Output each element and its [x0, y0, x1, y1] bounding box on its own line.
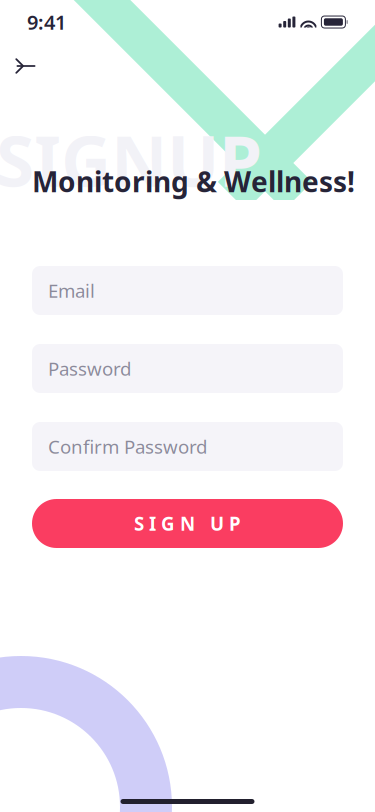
button[interactable]: Email — [32, 266, 343, 315]
staticText: Password — [48, 356, 131, 381]
staticText: S I G N U P — [134, 511, 241, 536]
button[interactable]: Password — [32, 344, 343, 393]
staticText: Email — [48, 278, 95, 303]
button[interactable]: S I G N U P — [32, 499, 343, 548]
staticText: Confirm Password — [48, 434, 207, 459]
staticText: SIGNUP — [0, 114, 262, 206]
button[interactable]: Back — [0, 44, 58, 88]
staticText: 9:41 — [27, 9, 66, 35]
staticText: Monitoring & Wellness! — [32, 163, 355, 200]
button[interactable]: Confirm Password — [32, 422, 343, 471]
